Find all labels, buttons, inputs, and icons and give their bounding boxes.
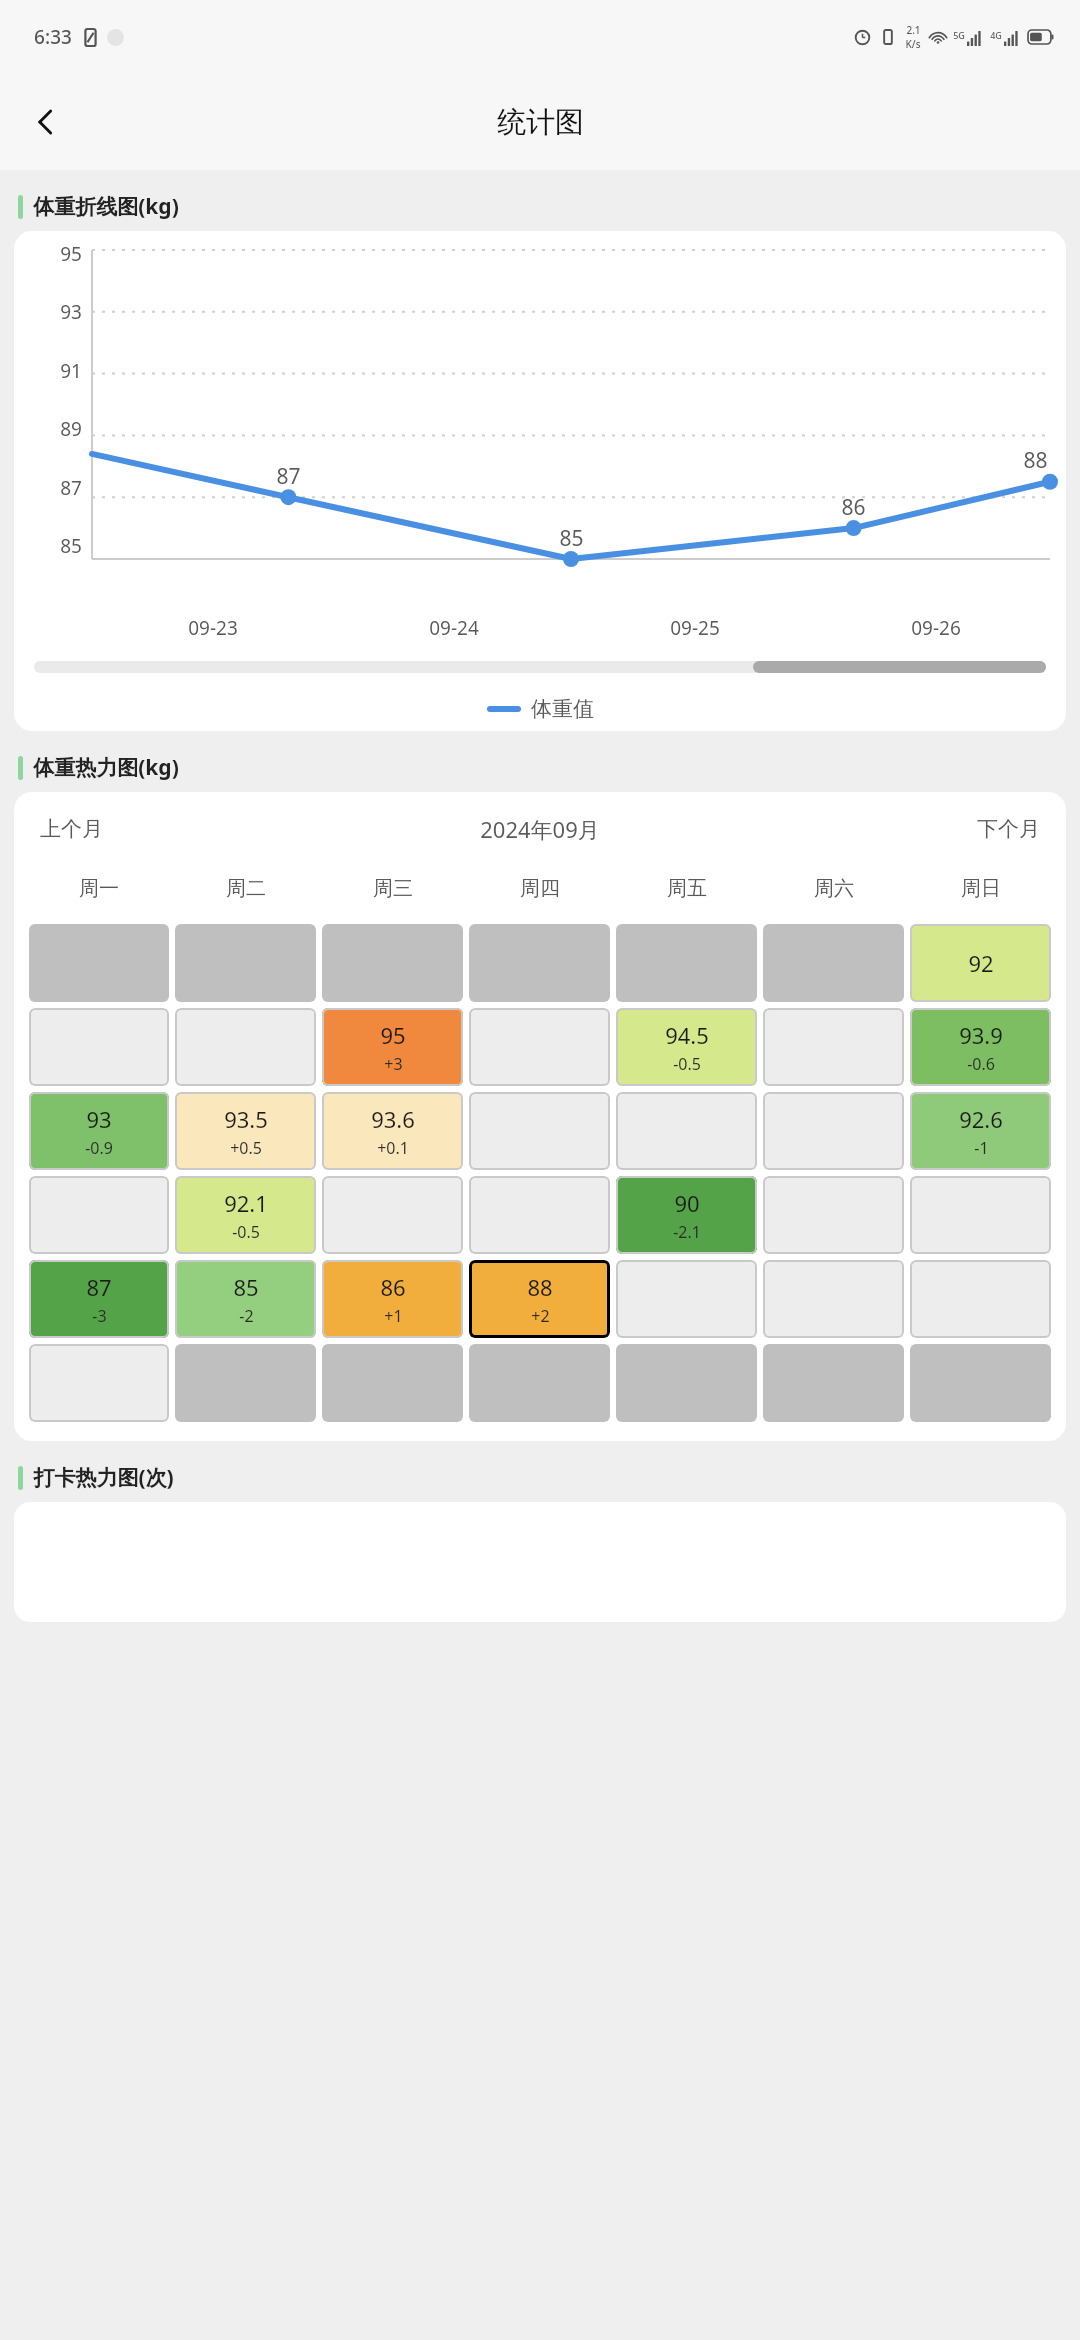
button[interactable]: 93.6	[322, 1092, 463, 1170]
button[interactable]	[910, 1344, 1051, 1422]
staticText: -0.9	[85, 1137, 113, 1159]
button[interactable]: 90	[616, 1176, 757, 1254]
button[interactable]	[469, 1344, 610, 1422]
button[interactable]: 94.5	[616, 1008, 757, 1086]
staticText: 93.6	[371, 1104, 415, 1134]
staticText: 5G	[953, 29, 965, 41]
staticText: 体重值	[531, 696, 594, 722]
button[interactable]: 93.5	[175, 1092, 316, 1170]
staticText: -0.6	[967, 1053, 995, 1075]
button[interactable]: 93.9	[910, 1008, 1051, 1086]
staticText: 09-23	[188, 615, 238, 641]
staticText: 87	[276, 462, 301, 491]
button[interactable]: 92.1	[175, 1176, 316, 1254]
button[interactable]	[616, 1344, 757, 1422]
button[interactable]	[763, 924, 904, 1002]
button[interactable]	[322, 924, 463, 1002]
button[interactable]	[469, 924, 610, 1002]
button[interactable]	[469, 1176, 610, 1254]
button[interactable]: 92.6	[910, 1092, 1051, 1170]
staticText: 打卡热力图(次)	[33, 1463, 174, 1492]
staticText: 94.5	[665, 1020, 709, 1050]
button[interactable]: 86	[322, 1260, 463, 1338]
staticText: 88	[1023, 446, 1048, 475]
staticText: +3	[384, 1053, 403, 1075]
staticText: 90	[674, 1188, 700, 1218]
button[interactable]: 88	[469, 1260, 610, 1338]
staticText: 09-25	[670, 615, 720, 641]
button[interactable]: 95	[322, 1008, 463, 1086]
button[interactable]	[910, 1176, 1051, 1254]
button[interactable]	[29, 1344, 169, 1422]
staticText: 93	[86, 1104, 112, 1134]
staticText: 92.6	[959, 1104, 1003, 1134]
staticText: 上个月	[40, 816, 103, 842]
staticText: 09-26	[911, 615, 961, 641]
staticText: 周一	[79, 876, 119, 901]
button[interactable]	[29, 1176, 169, 1254]
staticText: 85	[60, 533, 82, 559]
staticText: -0.5	[232, 1221, 260, 1243]
staticText: 93	[60, 299, 82, 325]
button[interactable]	[175, 924, 316, 1002]
staticText: +1	[384, 1305, 403, 1327]
staticText: 4G	[990, 29, 1002, 41]
staticText: -1	[974, 1137, 989, 1159]
staticText: 87	[60, 475, 82, 501]
button[interactable]	[175, 1008, 316, 1086]
staticText: 下个月	[977, 816, 1040, 842]
button[interactable]	[616, 1092, 757, 1170]
staticText: 2.1	[906, 23, 921, 37]
button[interactable]	[322, 1344, 463, 1422]
button[interactable]	[469, 1008, 610, 1086]
staticText: -2	[239, 1305, 254, 1327]
button[interactable]	[175, 1344, 316, 1422]
button[interactable]	[763, 1260, 904, 1338]
staticText: 93.5	[224, 1104, 268, 1134]
button[interactable]: 上个月	[32, 808, 111, 850]
button[interactable]	[469, 1092, 610, 1170]
staticText: 86	[841, 493, 866, 522]
button[interactable]	[910, 1260, 1051, 1338]
button[interactable]	[763, 1008, 904, 1086]
staticText: K/s	[905, 37, 921, 51]
button[interactable]: 92	[910, 924, 1051, 1002]
staticText: 周六	[814, 876, 854, 901]
staticText: -3	[92, 1305, 107, 1327]
staticText: 85	[559, 524, 584, 553]
staticText: 周日	[961, 876, 1001, 901]
staticText: 统计图	[497, 104, 584, 141]
staticText: 体重折线图(kg)	[33, 192, 179, 221]
button[interactable]: 85	[175, 1260, 316, 1338]
button[interactable]	[616, 924, 757, 1002]
button[interactable]	[763, 1344, 904, 1422]
button[interactable]: Back	[18, 94, 74, 150]
button[interactable]	[29, 1008, 169, 1086]
staticText: 6:33	[34, 24, 72, 50]
staticText: 2024年09月	[480, 814, 600, 844]
staticText: 85	[233, 1272, 259, 1302]
staticText: 92.1	[224, 1188, 268, 1218]
staticText: +0.5	[230, 1137, 262, 1159]
staticText: +2	[531, 1305, 550, 1327]
button[interactable]: 下个月	[969, 808, 1048, 850]
staticText: +0.1	[377, 1137, 409, 1159]
button[interactable]: 87	[29, 1260, 169, 1338]
button[interactable]	[763, 1092, 904, 1170]
staticText: 92	[968, 948, 994, 978]
button[interactable]	[29, 924, 169, 1002]
staticText: 周二	[226, 876, 266, 901]
button[interactable]	[322, 1176, 463, 1254]
staticText: 体重热力图(kg)	[33, 753, 179, 782]
button[interactable]	[616, 1260, 757, 1338]
staticText: 周三	[373, 876, 413, 901]
button[interactable]	[763, 1176, 904, 1254]
staticText: 周四	[520, 876, 560, 901]
staticText: 87	[86, 1272, 112, 1302]
staticText: 91	[60, 358, 82, 384]
staticText: 95	[60, 241, 82, 267]
staticText: -2.1	[673, 1221, 701, 1243]
staticText: 88	[527, 1272, 553, 1302]
staticText: 09-24	[429, 615, 479, 641]
button[interactable]: 93	[29, 1092, 169, 1170]
